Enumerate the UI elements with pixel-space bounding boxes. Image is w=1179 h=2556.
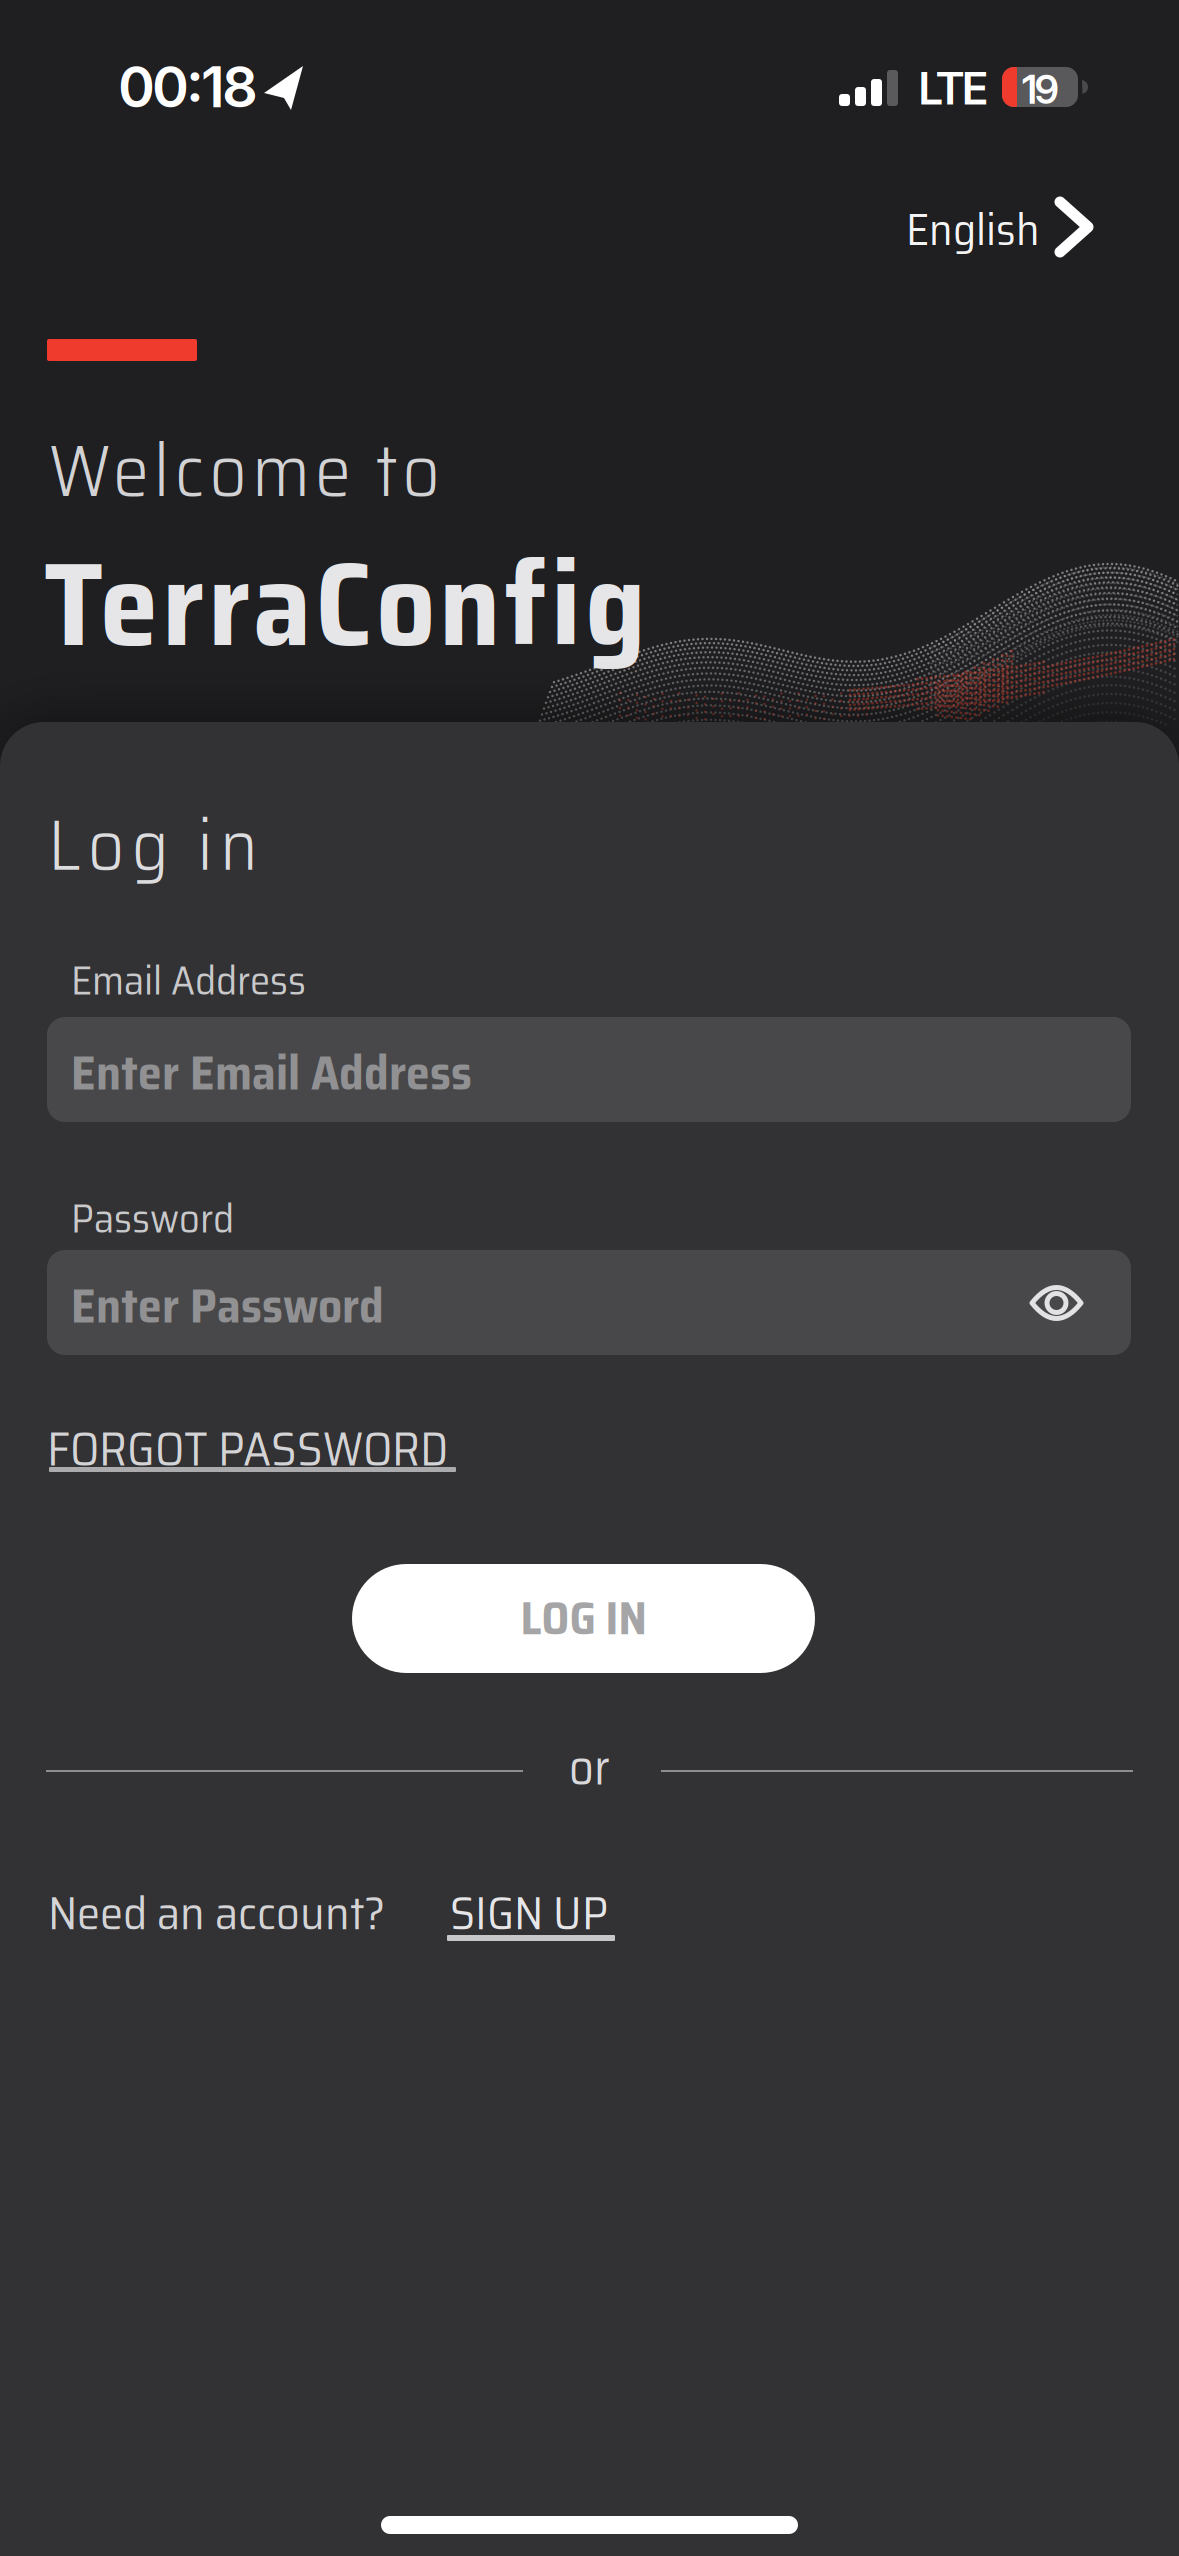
- staticText: Need an account?: [48, 1876, 385, 1950]
- staticText: FORGOT PASSWORD: [47, 1411, 448, 1487]
- staticText: 00:18: [118, 53, 258, 121]
- staticText: Log in: [48, 788, 258, 901]
- staticText: Enter Email Address: [71, 1035, 472, 1111]
- staticText: Welcome to: [49, 412, 440, 528]
- staticText: Password: [71, 1186, 234, 1250]
- staticText: LTE: [918, 61, 988, 115]
- staticText: SIGN UP: [450, 1876, 608, 1950]
- staticText: Enter Password: [71, 1268, 384, 1344]
- staticText: TerraConfig: [44, 511, 646, 697]
- staticText: English: [906, 194, 1040, 265]
- staticText: LOG IN: [520, 1582, 646, 1654]
- staticText: 19: [1022, 65, 1058, 113]
- staticText: or: [569, 1729, 610, 1806]
- staticText: Email Address: [71, 948, 306, 1012]
